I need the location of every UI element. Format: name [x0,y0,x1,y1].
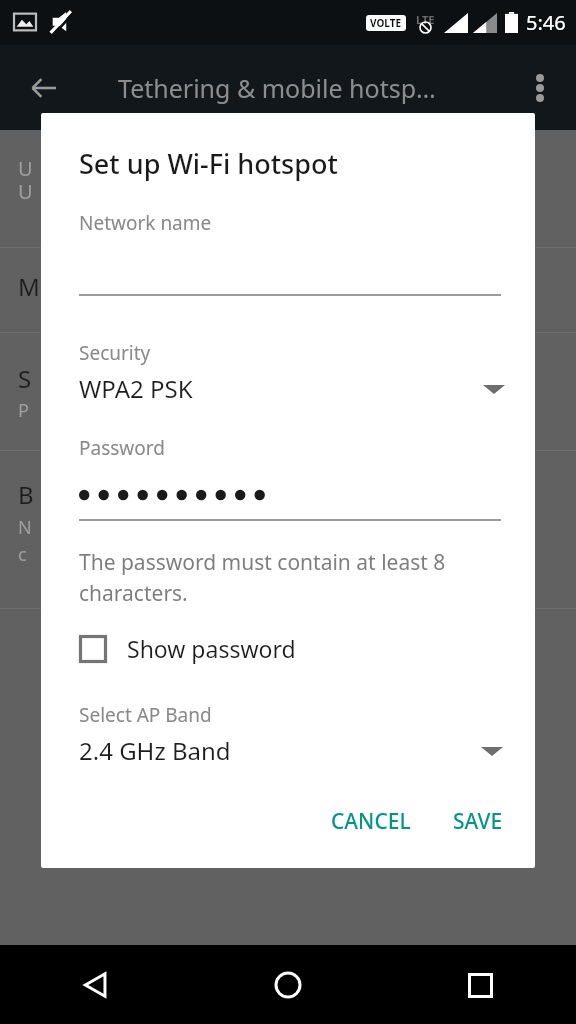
button[interactable]: 2.4 GHz Band [41,734,535,767]
button[interactable]: WPA2 PSK [41,372,535,405]
staticText: N [18,515,32,540]
staticText: Set up Wi-Fi hotspot [79,145,338,182]
staticText: S [18,362,32,395]
staticText: U [18,178,33,205]
staticText: U [18,155,33,182]
staticText: Password [79,435,165,461]
staticText: Network name [79,210,212,236]
button[interactable]: Back [66,955,126,1015]
staticText: 2.4 GHz Band [79,734,231,767]
button[interactable]: CANCEL [317,797,425,846]
button[interactable]: Back [16,60,72,116]
staticText: CANCEL [331,807,411,836]
button[interactable]: Home [258,955,318,1015]
staticText: Show password [127,633,296,664]
staticText: The password must contain at least 8 cha… [79,548,499,607]
staticText: Security [79,340,151,366]
button[interactable]: Show password [41,633,535,664]
button[interactable]: More options [514,62,566,114]
staticText: VOLTE [370,16,402,30]
staticText: c [18,542,27,567]
staticText: Select AP Band [79,702,212,728]
button[interactable]: Recent apps [450,955,510,1015]
staticText: B [18,478,34,511]
staticText: WPA2 PSK [79,372,193,405]
staticText: P [18,398,29,423]
staticText: M [18,270,40,303]
staticText: Tethering & mobile hotsp… [118,71,436,105]
button[interactable]: SAVE [439,797,517,846]
staticText: LTE [416,12,435,27]
staticText: SAVE [453,807,503,836]
staticText: 5:46 [526,9,566,36]
